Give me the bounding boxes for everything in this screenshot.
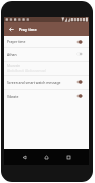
button[interactable]: Recents: [64, 153, 73, 162]
button[interactable]: Screen and smart watch message: [4, 75, 89, 89]
button[interactable]: Athan: [4, 47, 89, 61]
staticText: Muezzin: [7, 63, 21, 68]
button[interactable]: Muezzin: [4, 61, 89, 75]
staticText: Prayer time: [7, 39, 76, 44]
button[interactable]: Home: [42, 153, 51, 162]
button[interactable]: Prayer time: [4, 36, 89, 47]
button[interactable]: Back: [20, 153, 29, 162]
staticText: Athan: [7, 52, 76, 57]
staticText: Pray time: [19, 27, 37, 32]
staticText: Vibrate: [7, 94, 76, 99]
button[interactable]: Back: [4, 22, 18, 36]
staticText: Abdulbasit Abdussamad: [7, 68, 46, 73]
staticText: Screen and smart watch message: [7, 80, 76, 85]
button[interactable]: Vibrate: [4, 89, 89, 103]
